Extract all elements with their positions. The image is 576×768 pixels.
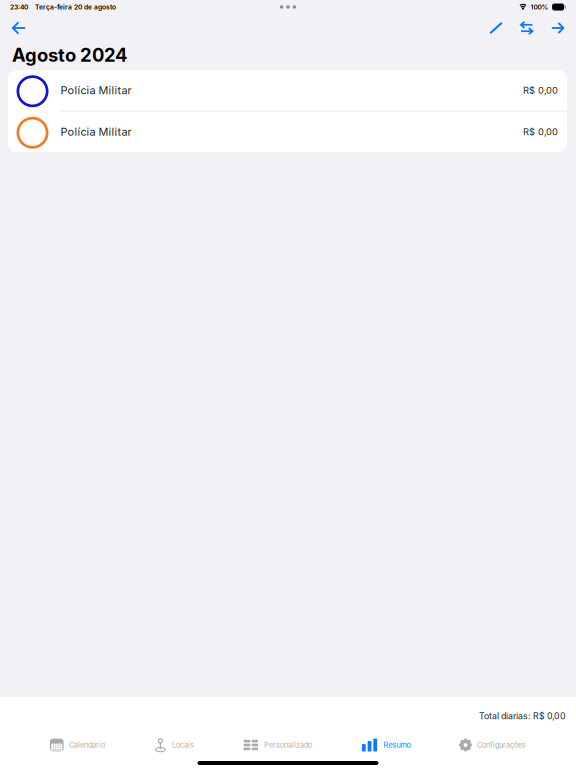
button[interactable]: Swap bbox=[517, 15, 544, 41]
staticText: 100% bbox=[530, 3, 548, 11]
button[interactable]: Resumo bbox=[355, 730, 416, 760]
button[interactable]: Back bbox=[0, 15, 38, 41]
staticText: Configurações bbox=[477, 741, 526, 749]
button[interactable]: Forward bbox=[544, 15, 576, 41]
staticText: R$ 0,00 bbox=[523, 126, 558, 137]
staticText: Calendário bbox=[69, 741, 105, 749]
staticText: Resumo bbox=[383, 741, 410, 749]
staticText: Locais bbox=[172, 741, 194, 749]
button[interactable]: Locais bbox=[148, 730, 200, 760]
staticText: Polícia Militar bbox=[60, 84, 131, 97]
staticText: Terça-feira 20 de agosto bbox=[35, 3, 116, 11]
button[interactable]: Polícia Militar bbox=[8, 111, 567, 152]
button[interactable]: Configurações bbox=[453, 730, 532, 760]
button[interactable]: Polícia Militar bbox=[8, 70, 567, 110]
button[interactable]: Personalizado bbox=[237, 730, 318, 760]
staticText: Personalizado bbox=[264, 741, 312, 749]
staticText: R$ 0,00 bbox=[523, 85, 558, 96]
staticText: Agosto 2024 bbox=[12, 44, 127, 66]
staticText: Polícia Militar bbox=[60, 125, 131, 138]
button[interactable]: Edit bbox=[481, 15, 517, 41]
staticText: 23:40 bbox=[10, 3, 28, 11]
button[interactable]: Calendário bbox=[44, 730, 111, 760]
staticText: Total diarias: R$ 0,00 bbox=[479, 711, 566, 721]
